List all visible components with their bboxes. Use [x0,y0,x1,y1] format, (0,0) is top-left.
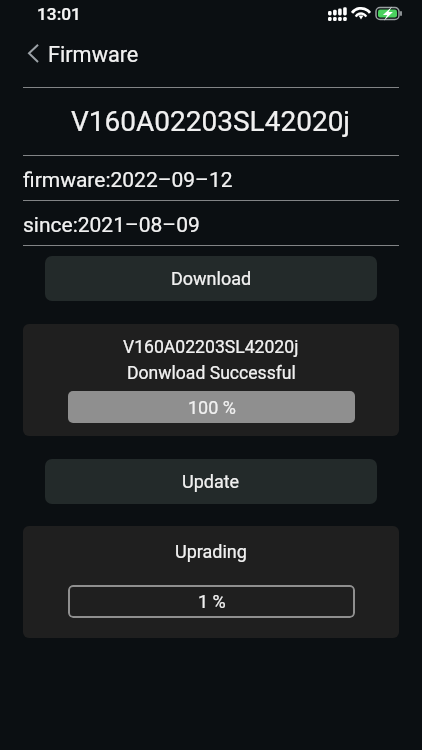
button[interactable]: Back [0,30,422,76]
staticText: firmware:2022–09–12 [23,168,233,193]
staticText: Update [182,471,240,492]
staticText: Donwload Successful [127,363,296,384]
staticText: Download [171,268,252,289]
button[interactable]: Update [45,459,377,504]
staticText: Uprading [175,541,247,562]
staticText: Firmware [48,42,139,67]
staticText: V160A02203SL42020j [71,105,351,138]
staticText: 13:01 [37,4,81,24]
staticText: V160A02203SL42020j [123,337,299,358]
staticText: since:2021–08–09 [23,213,200,238]
staticText: 100 % [188,397,236,418]
staticText: 1 % [198,591,226,612]
button[interactable]: Download [45,256,377,301]
other: Back [26,44,46,64]
